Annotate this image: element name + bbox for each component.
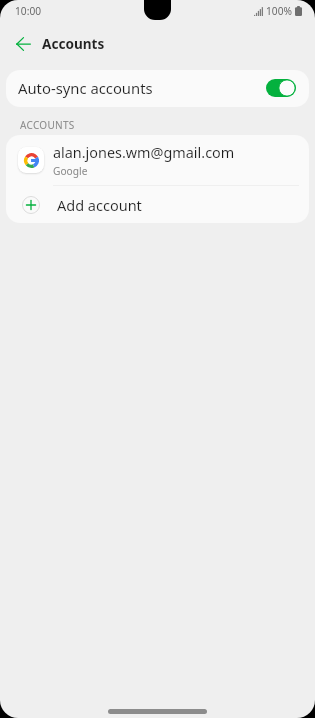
button[interactable]: Add account bbox=[6, 186, 309, 223]
staticText: Accounts bbox=[42, 34, 105, 53]
staticText: Auto-sync accounts bbox=[18, 78, 153, 98]
staticText: Add account bbox=[57, 195, 142, 215]
staticText: ACCOUNTS bbox=[20, 118, 75, 132]
button[interactable]: Auto-sync accounts, on bbox=[266, 79, 296, 97]
staticText: alan.jones.wm@gmail.com bbox=[53, 143, 235, 163]
button[interactable]: Navigate up bbox=[8, 29, 38, 59]
staticText: Google bbox=[53, 164, 88, 178]
button[interactable]: Auto-sync accounts bbox=[6, 70, 309, 107]
staticText: 100% bbox=[266, 4, 292, 18]
button[interactable]: alan.jones.wm@gmail.com bbox=[6, 135, 309, 185]
staticText: 10:00 bbox=[15, 4, 42, 18]
